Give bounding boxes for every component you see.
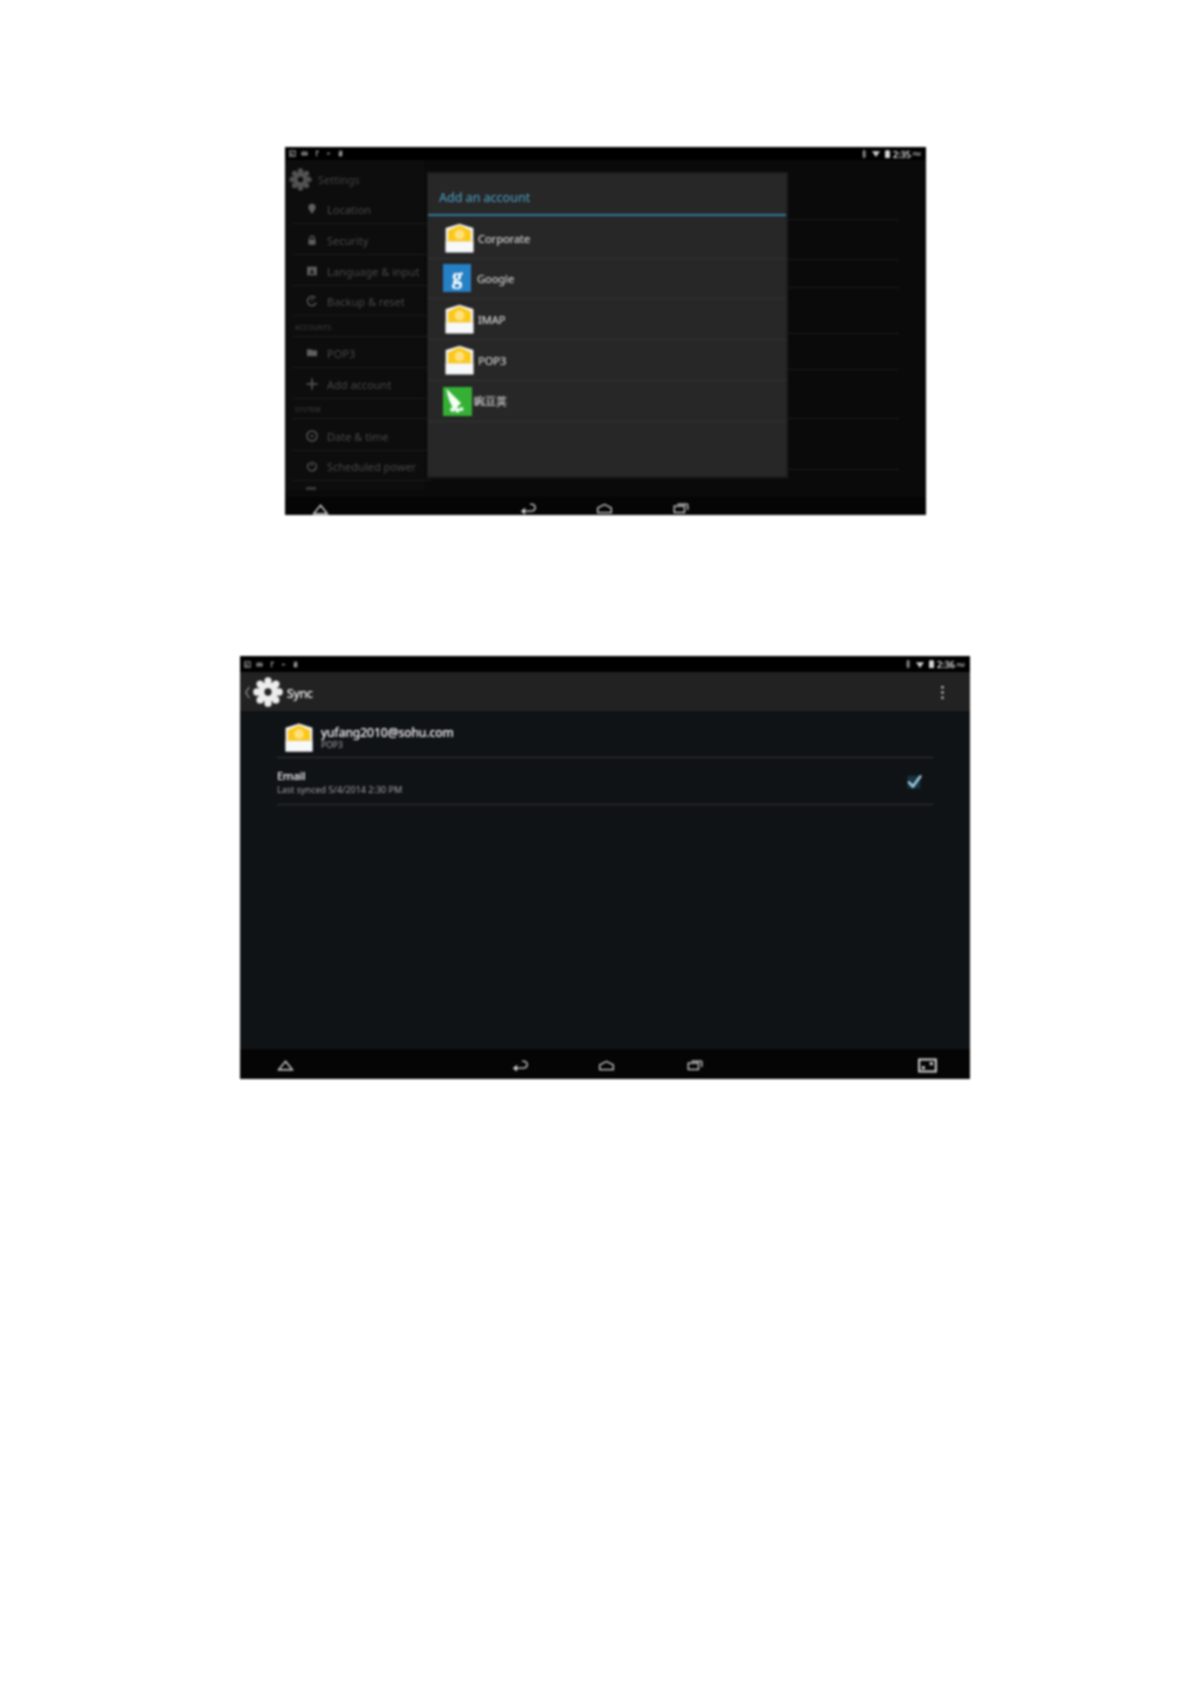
staticText: 2:36 [937, 658, 955, 670]
button[interactable]: Backup & reset [306, 290, 436, 312]
button[interactable]: IMAP [428, 299, 786, 339]
button[interactable]: 豌豆荚 [428, 381, 786, 421]
staticText: Email [277, 768, 306, 783]
button[interactable]: Back [509, 1054, 531, 1076]
button[interactable]: Email [240, 762, 970, 804]
button[interactable]: POP3 [428, 340, 786, 380]
button[interactable]: Recents [670, 499, 692, 515]
staticText: Last synced 5/4/2014 2:30 PM [277, 783, 403, 795]
button[interactable]: Home [595, 1054, 617, 1076]
button[interactable]: Screenshot [916, 1055, 938, 1075]
staticText: IMAP [478, 312, 506, 327]
button[interactable]: More options [930, 680, 954, 704]
staticText: Date & time [327, 429, 389, 444]
staticText: Add an account [439, 189, 531, 206]
staticText: Corporate [478, 231, 531, 246]
staticText: Google [477, 271, 515, 286]
button[interactable]: Navigate up [242, 677, 292, 707]
button[interactable]: Scheduled power [306, 455, 436, 477]
staticText: Security [327, 233, 369, 248]
staticText: yufang2010@sohu.com [321, 724, 454, 740]
button[interactable]: Up [310, 500, 330, 515]
button[interactable]: Back [517, 499, 539, 515]
staticText: SYSTEM [295, 405, 321, 414]
button[interactable]: Language & input [306, 260, 436, 282]
staticText: Add account [327, 377, 392, 392]
button[interactable]: g [428, 258, 786, 298]
staticText: ACCOUNTS [295, 323, 332, 332]
button[interactable]: POP3 [306, 342, 436, 364]
button[interactable]: Recents [684, 1054, 706, 1076]
button[interactable]: Corporate [428, 218, 786, 258]
staticText: g [452, 264, 463, 290]
staticText: Scheduled power [327, 459, 417, 474]
staticText: POP3 [327, 346, 356, 361]
staticText: Language & input [327, 264, 420, 279]
staticText: POP3 [321, 739, 343, 751]
button[interactable]: Security [306, 229, 436, 251]
staticText: Settings [318, 172, 360, 187]
button[interactable]: Home [593, 499, 615, 515]
staticText: Location [327, 202, 372, 217]
button[interactable]: Up [275, 1055, 295, 1075]
staticText: Sync [287, 685, 313, 701]
staticText: Backup & reset [327, 294, 405, 309]
staticText: POP3 [478, 353, 507, 368]
staticText: 豌豆荚 [474, 394, 507, 408]
button[interactable]: Add account [306, 373, 436, 395]
staticText: PM [955, 661, 965, 668]
staticText: PM [911, 150, 921, 157]
button[interactable]: yufang2010@sohu.com [240, 714, 970, 758]
button[interactable]: Location [306, 198, 436, 220]
staticText: 2:35 [893, 148, 911, 160]
button[interactable]: Date & time [306, 425, 436, 447]
